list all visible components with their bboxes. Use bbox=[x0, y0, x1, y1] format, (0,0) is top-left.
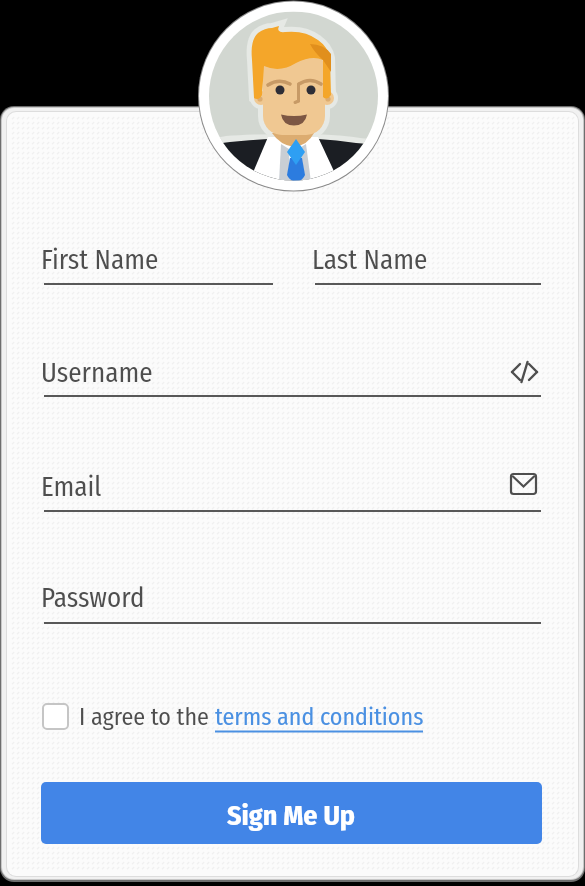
staticText: Email bbox=[41, 471, 102, 503]
staticText: I agree to the bbox=[79, 703, 215, 732]
staticText: First Name bbox=[41, 244, 159, 276]
button[interactable] bbox=[44, 352, 541, 398]
button[interactable] bbox=[44, 579, 541, 625]
staticText: Sign Me Up bbox=[227, 799, 356, 833]
staticText: Username bbox=[41, 357, 153, 389]
button[interactable] bbox=[44, 467, 541, 513]
button[interactable]: terms and conditions bbox=[215, 703, 424, 732]
button[interactable] bbox=[42, 703, 69, 730]
button[interactable] bbox=[44, 240, 273, 286]
staticText: Password bbox=[41, 582, 145, 614]
button[interactable]: Sign Me Up bbox=[41, 782, 542, 844]
button[interactable] bbox=[315, 240, 541, 286]
staticText: Last Name bbox=[312, 244, 428, 276]
